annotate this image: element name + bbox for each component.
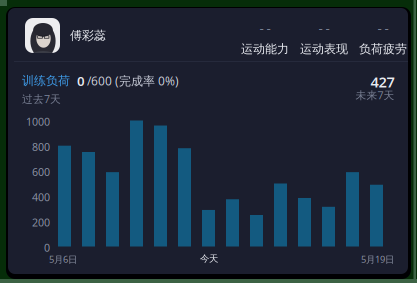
- staticText: - -: [377, 19, 388, 37]
- staticText: 过去7天: [22, 92, 61, 106]
- staticText: 今天: [200, 253, 218, 264]
- staticText: 训练负荷: [22, 73, 70, 88]
- staticText: 1000: [26, 114, 50, 129]
- staticText: 运动表现: [300, 42, 348, 56]
- staticText: 0: [44, 240, 50, 255]
- staticText: 600: [32, 165, 50, 179]
- staticText: 负荷疲劳: [359, 42, 407, 56]
- button[interactable]: - -: [359, 19, 407, 56]
- button[interactable]: 傅彩蕊: [25, 18, 106, 53]
- staticText: /600 (完成率 0%): [87, 73, 179, 89]
- staticText: 0: [77, 72, 85, 90]
- staticText: 未来7天: [355, 88, 394, 102]
- staticText: 200: [32, 215, 50, 229]
- staticText: - -: [259, 19, 270, 37]
- staticText: 5月19日: [361, 253, 394, 265]
- staticText: 427: [370, 72, 394, 91]
- button[interactable]: - -: [300, 19, 348, 56]
- staticText: 800: [32, 140, 50, 154]
- staticText: 5月6日: [49, 253, 77, 265]
- staticText: 400: [32, 190, 50, 204]
- staticText: - -: [318, 19, 329, 37]
- staticText: 运动能力: [241, 42, 289, 56]
- button[interactable]: - -: [241, 19, 289, 56]
- staticText: 傅彩蕊: [70, 28, 106, 43]
